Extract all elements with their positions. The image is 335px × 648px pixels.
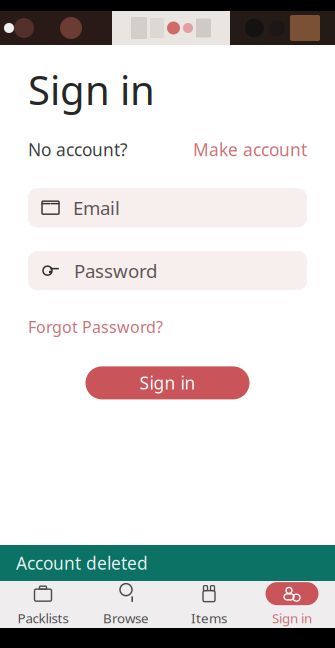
button[interactable]: Make account — [193, 138, 307, 161]
button[interactable]: Browse — [84, 581, 167, 628]
button[interactable]: Packlists — [1, 581, 84, 628]
staticText: Packlists — [17, 609, 68, 627]
staticText: Make account — [193, 138, 307, 161]
button[interactable]: Sign in — [250, 581, 333, 628]
staticText: Account deleted — [16, 551, 148, 574]
button[interactable]: Sign in — [85, 366, 249, 399]
button[interactable]: Items — [167, 581, 250, 628]
staticText: No account? — [28, 138, 128, 161]
staticText: Sign in — [28, 63, 155, 116]
button[interactable]: Password — [28, 251, 307, 290]
staticText: Forgot Password? — [28, 316, 163, 337]
staticText: Items — [191, 609, 227, 627]
staticText: Sign in — [139, 371, 195, 394]
button[interactable]: Forgot Password? — [28, 316, 163, 337]
button[interactable]: Email — [28, 188, 307, 227]
staticText: Email — [73, 195, 120, 220]
staticText: Sign in — [272, 609, 312, 627]
staticText: Password — [74, 258, 157, 283]
staticText: Browse — [103, 609, 149, 627]
